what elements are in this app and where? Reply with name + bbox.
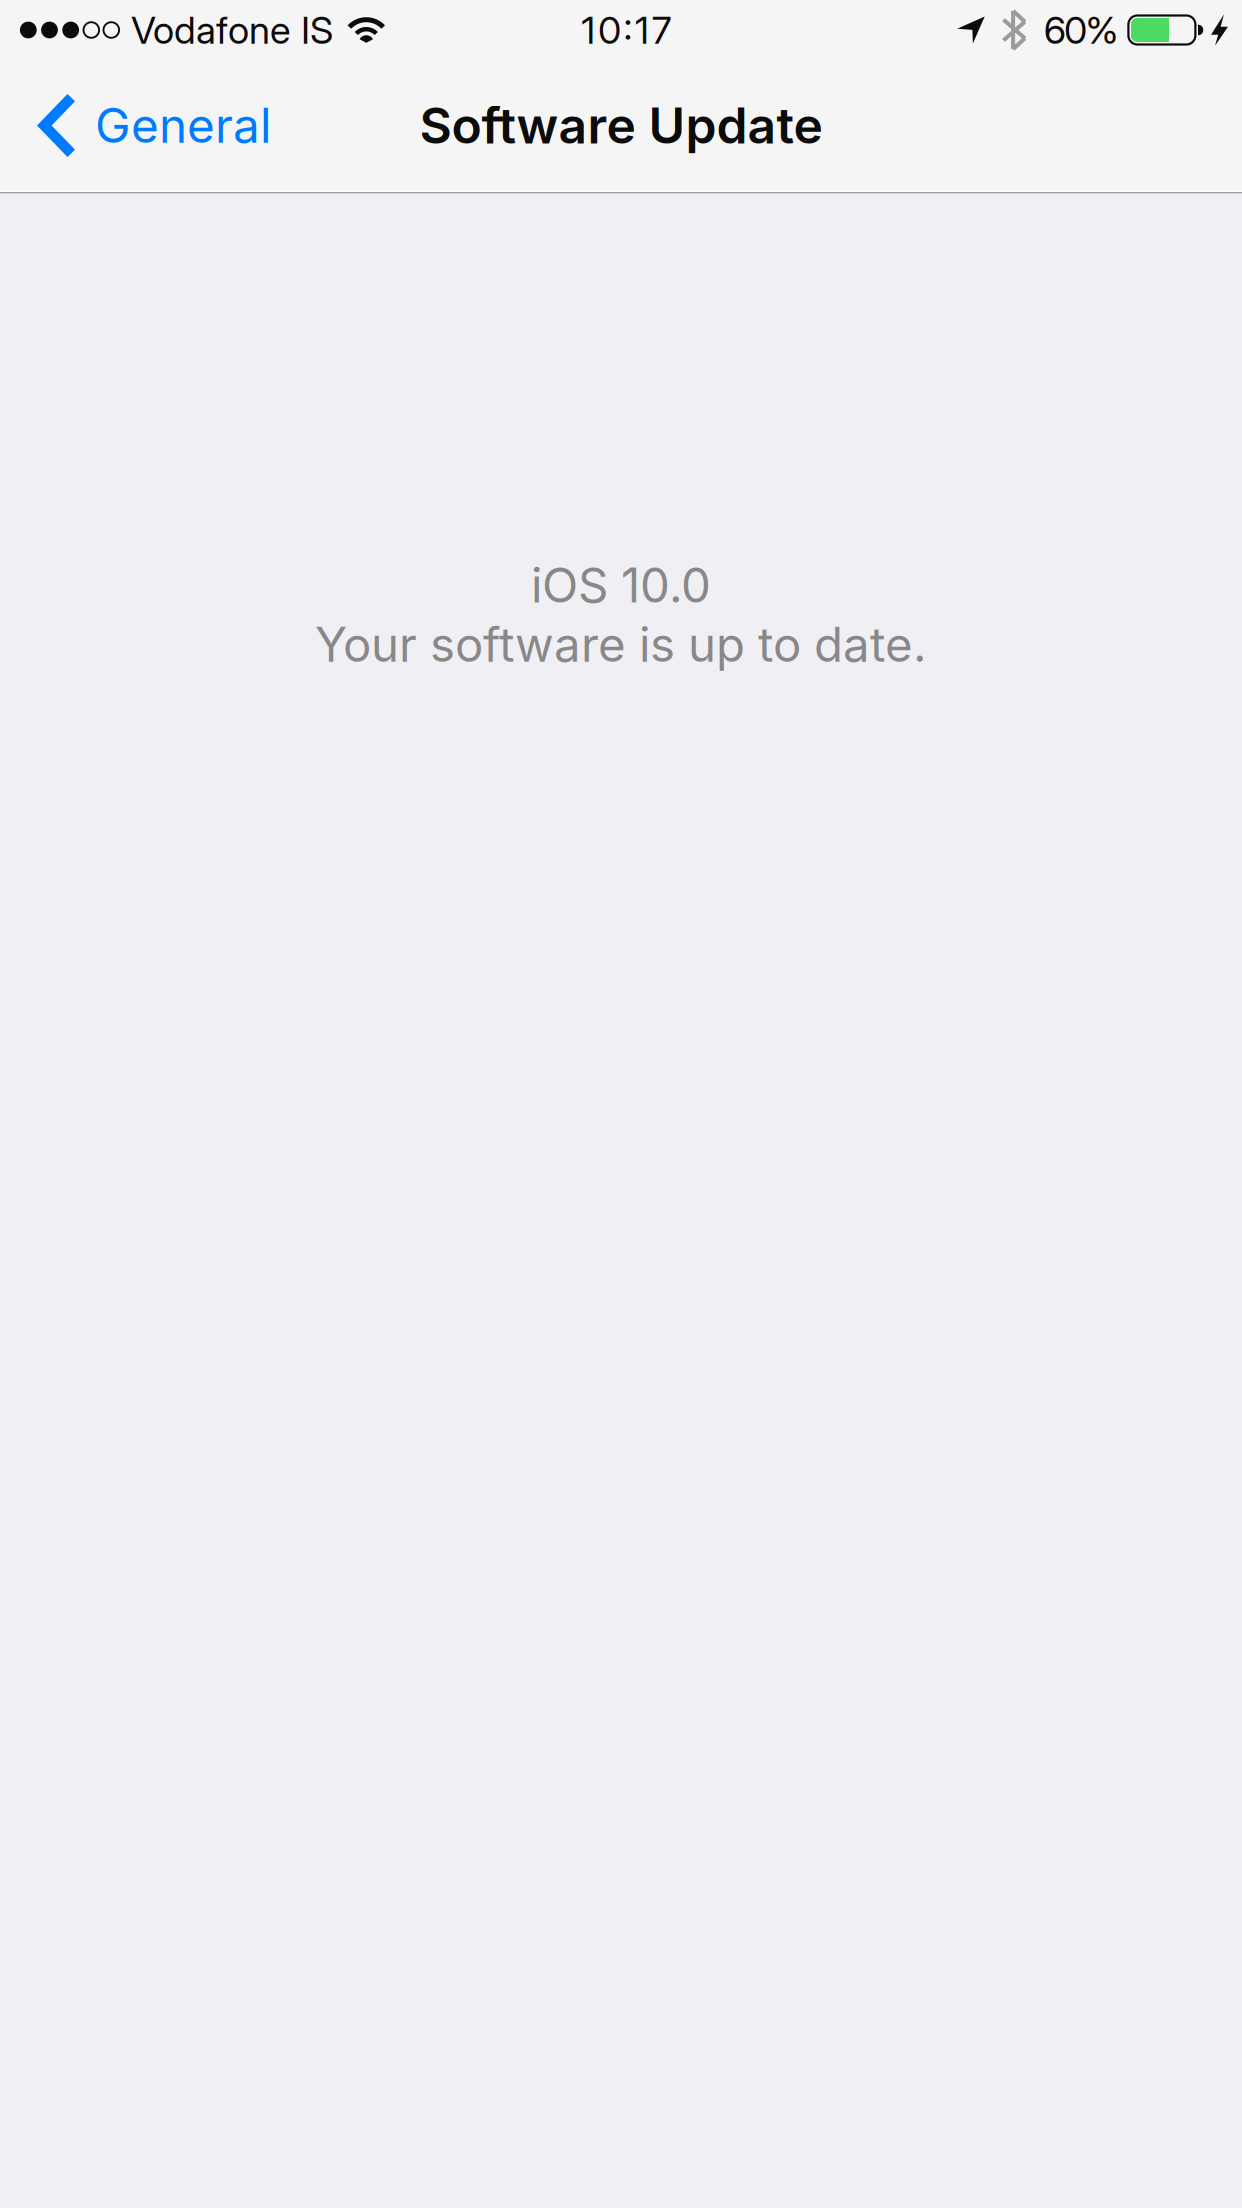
staticText: 60% — [1044, 7, 1118, 53]
staticText: Your software is up to date. — [315, 616, 927, 673]
staticText: Vodafone IS — [131, 7, 333, 53]
staticText: 10:17 — [581, 7, 672, 53]
button[interactable]: Back to General — [0, 60, 286, 191]
staticText: Software Update — [419, 95, 822, 156]
staticText: iOS 10.0 — [531, 557, 711, 614]
staticText: General — [95, 97, 272, 154]
